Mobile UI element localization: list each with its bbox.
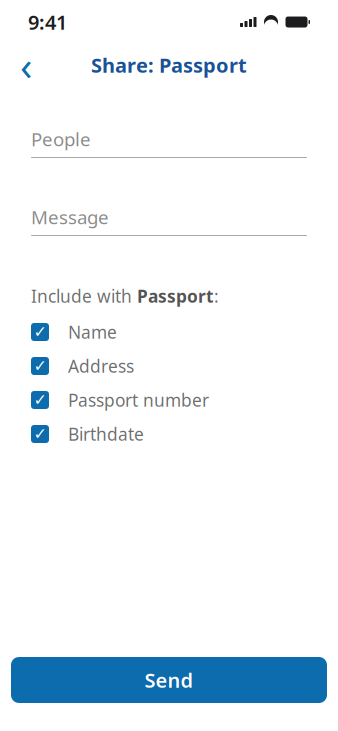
staticText: 9:41	[28, 9, 67, 35]
staticText: :	[214, 284, 219, 307]
staticText: People	[31, 127, 91, 151]
staticText: Address	[68, 354, 134, 377]
button[interactable]: ✓	[31, 319, 307, 345]
staticText: ✓	[33, 391, 46, 409]
staticText: Include with	[31, 284, 137, 307]
staticText: Passport	[137, 284, 214, 307]
staticText: ‹	[20, 38, 32, 91]
button[interactable]: ✓	[31, 387, 307, 413]
staticText: ✓	[33, 357, 46, 375]
staticText: Birthdate	[68, 422, 144, 445]
staticText: Share: Passport	[91, 52, 247, 78]
button[interactable]: ✓	[31, 421, 307, 447]
button[interactable]: ✓	[31, 353, 307, 379]
staticText: Name	[68, 320, 117, 343]
staticText: Send	[144, 667, 193, 693]
staticText: ✓	[33, 323, 46, 341]
button[interactable]: Send	[11, 657, 327, 703]
button[interactable]: Back	[6, 45, 46, 85]
staticText: ✓	[33, 425, 46, 443]
staticText: Passport number	[68, 388, 209, 411]
staticText: Message	[31, 205, 109, 229]
